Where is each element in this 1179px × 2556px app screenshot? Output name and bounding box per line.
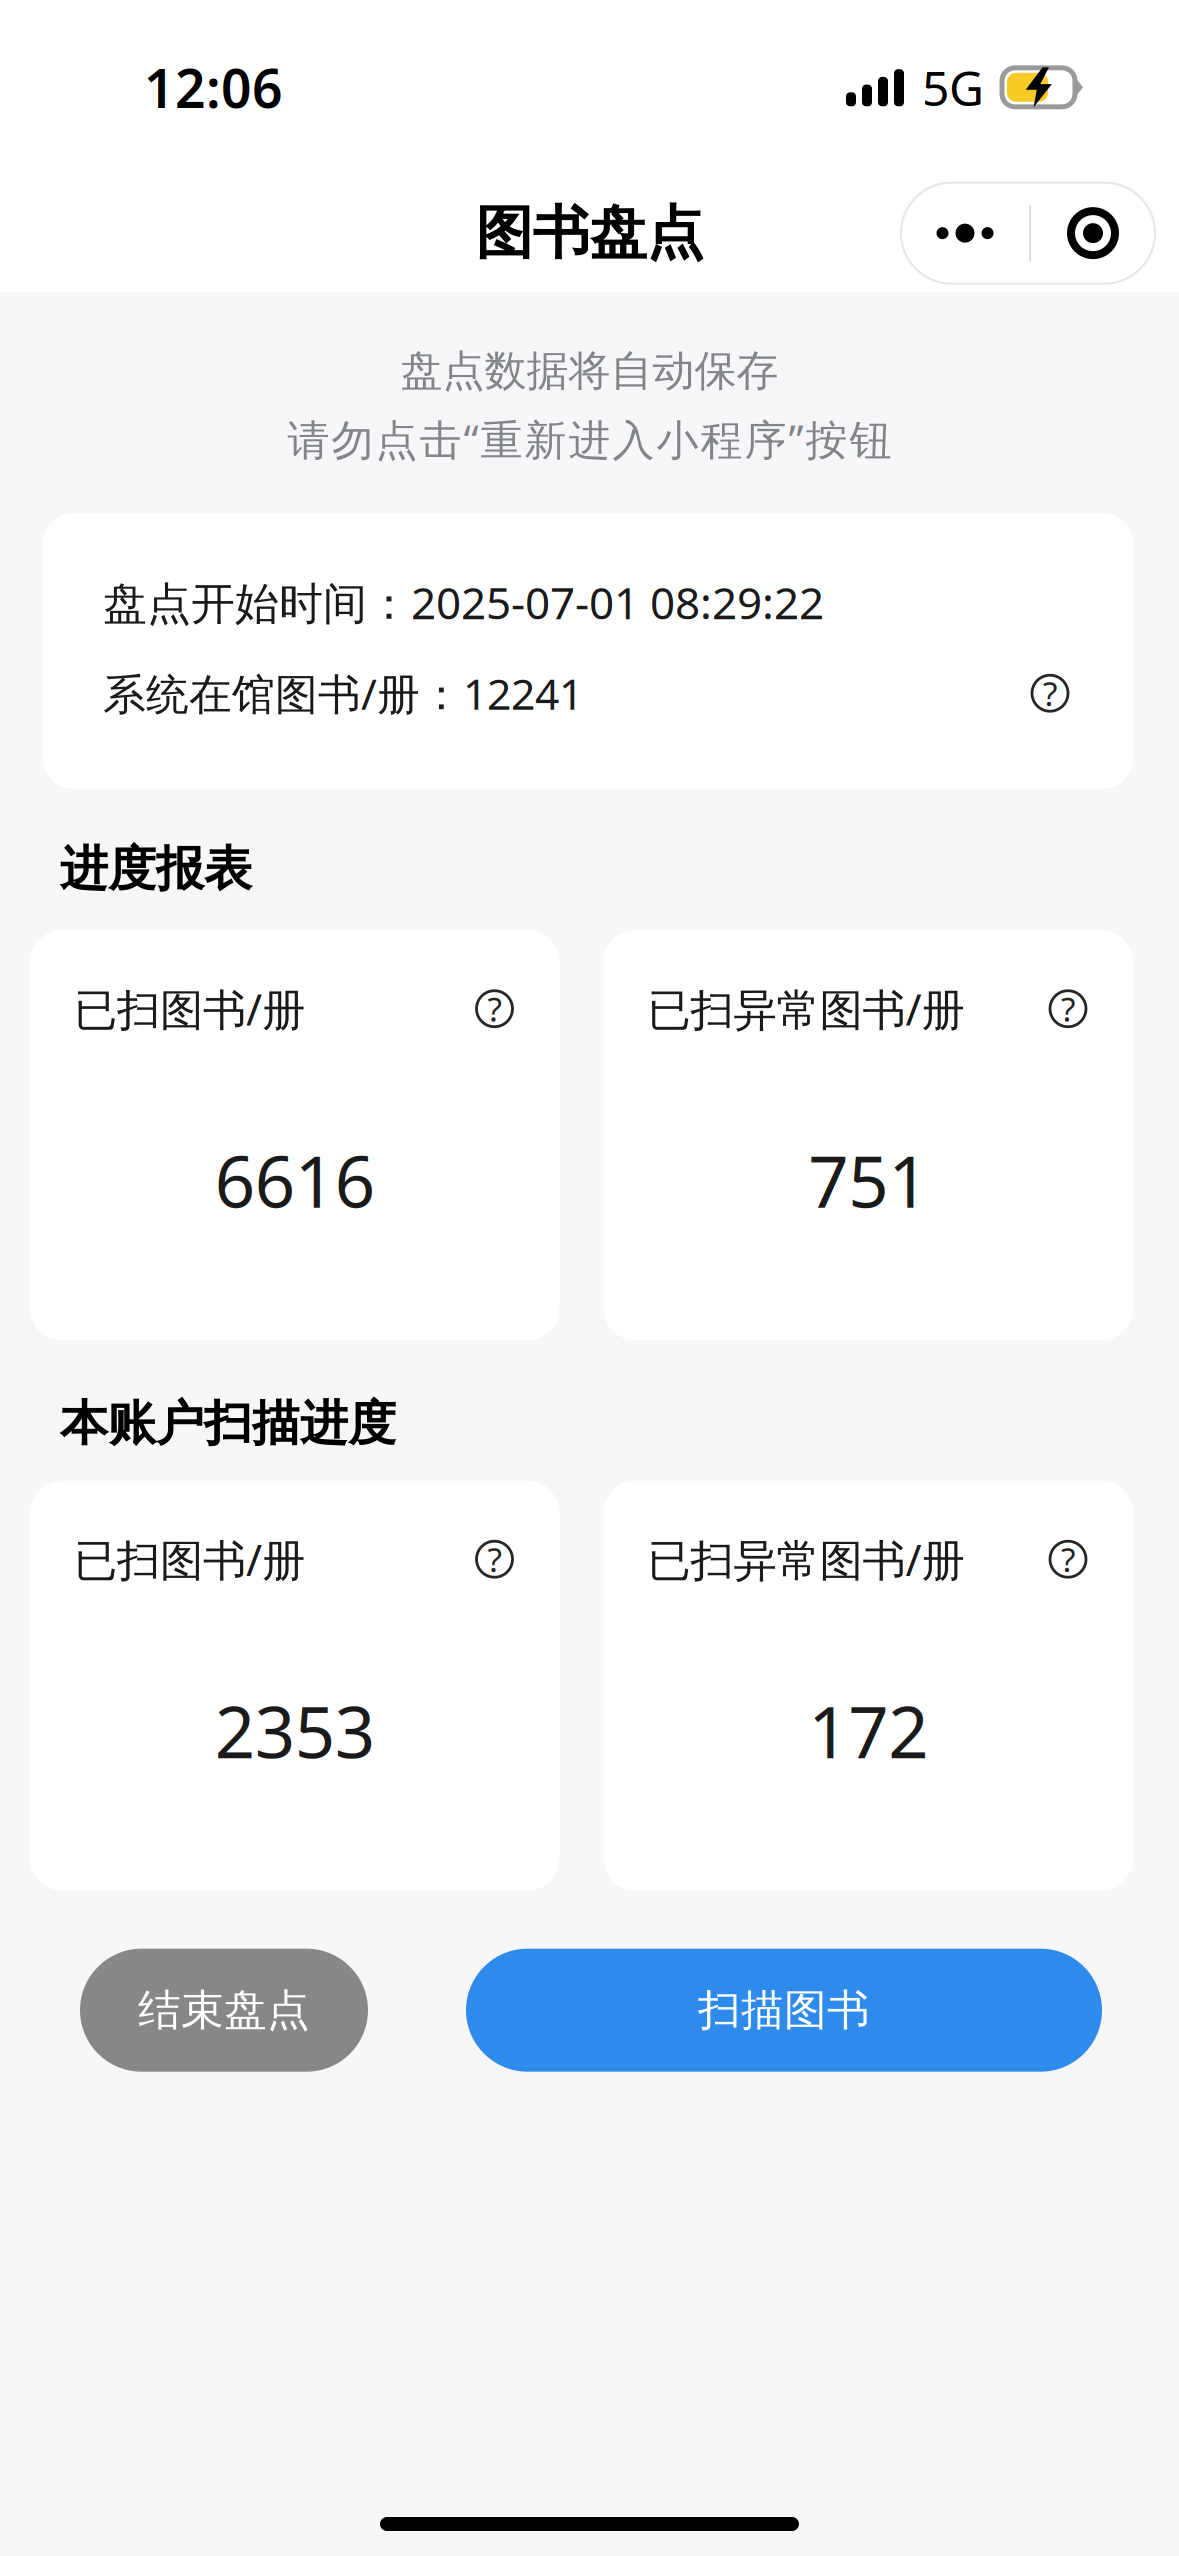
button[interactable]: Close mini program (1031, 183, 1155, 284)
button[interactable]: Help (1029, 672, 1071, 714)
staticText: 已扫异常图书/册 (647, 979, 964, 1038)
staticText: 751 (808, 1132, 928, 1228)
button[interactable]: Help (473, 1538, 515, 1580)
staticText: ? (1061, 1536, 1075, 1582)
button[interactable]: Help (473, 988, 515, 1030)
staticText: 12:06 (144, 51, 283, 124)
staticText: 已扫异常图书/册 (647, 1530, 964, 1589)
staticText: ? (1043, 670, 1057, 716)
staticText: 已扫图书/册 (74, 979, 305, 1038)
staticText: 结束盘点 (138, 1983, 310, 2037)
staticText: 172 (808, 1683, 928, 1779)
button[interactable]: Help (1047, 988, 1089, 1030)
staticText: ? (487, 986, 501, 1031)
button[interactable]: 扫描图书 (466, 1949, 1102, 2072)
staticText: ? (487, 1536, 501, 1582)
staticText: 进度报表 (60, 839, 252, 899)
button[interactable]: Help (1047, 1538, 1089, 1580)
button[interactable]: 结束盘点 (80, 1949, 368, 2072)
staticText: 6616 (215, 1132, 375, 1228)
staticText: 盘点开始时间：2025-07-01 08:29:22 (103, 572, 824, 632)
staticText: 盘点数据将自动保存 (400, 345, 778, 397)
staticText: ? (1061, 986, 1075, 1031)
staticText: 系统在馆图书/册：12241 (103, 664, 583, 722)
staticText: 5G (922, 55, 984, 120)
staticText: 图书盘点 (475, 197, 703, 269)
staticText: 请勿点击“重新进入小程序”按钮 (287, 410, 891, 468)
staticText: 本账户扫描进度 (60, 1393, 396, 1454)
staticText: 2353 (215, 1683, 375, 1779)
staticText: 已扫图书/册 (74, 1530, 305, 1589)
button[interactable]: More (901, 183, 1029, 284)
staticText: 扫描图书 (698, 1983, 870, 2037)
